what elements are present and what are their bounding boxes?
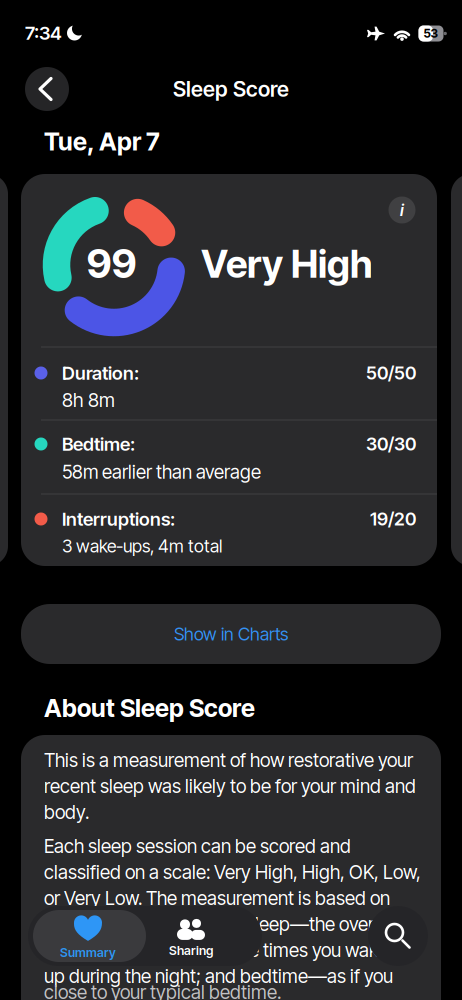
staticText: 53 <box>423 26 438 41</box>
staticText: Each sleep session can be scored and <box>44 834 351 857</box>
staticText: About Sleep Score <box>44 693 255 723</box>
staticText: i <box>400 200 404 220</box>
staticText: close to your typical bedtime. <box>44 980 281 1000</box>
staticText: amount of time asleep; the times you wak… <box>44 938 388 961</box>
staticText: Duration: <box>62 362 139 384</box>
staticText: Very High <box>201 241 373 287</box>
staticText: Sleep Score <box>173 76 289 102</box>
staticText: up during the night; and bedtime—as if y… <box>44 964 393 987</box>
staticText: 99 <box>86 239 136 288</box>
button[interactable]: Search <box>368 906 428 966</box>
button[interactable]: Summary <box>33 910 143 966</box>
staticText: 7:34 <box>25 22 62 44</box>
staticText: 30/30 <box>366 433 416 455</box>
staticText: Bedtime: <box>62 433 135 455</box>
staticText: classified on a scale: Very High, High, … <box>44 860 421 883</box>
staticText: body. <box>44 800 89 823</box>
button[interactable]: Back <box>25 67 69 111</box>
staticText: Tue, Apr 7 <box>44 127 160 156</box>
button[interactable]: Show in Charts <box>21 604 441 664</box>
staticText: 50/50 <box>366 362 416 384</box>
staticText: This is a measurement of how restorative… <box>44 748 413 771</box>
button[interactable]: Info <box>388 196 415 223</box>
staticText: Summary <box>60 945 116 960</box>
staticText: Show in Charts <box>174 623 288 645</box>
button[interactable]: Sharing <box>141 910 241 966</box>
staticText: or Very Low. The measurement is based on <box>44 886 390 909</box>
staticText: 58m earlier than average <box>62 461 261 483</box>
staticText: 8h 8m <box>62 388 115 412</box>
staticText: Sharing <box>169 943 213 958</box>
staticText: 19/20 <box>370 508 416 530</box>
staticText: 3 wake-ups, 4m total <box>62 535 222 557</box>
staticText: Interruptions: <box>62 508 175 530</box>
staticText: recent sleep was likely to be for your m… <box>44 774 416 797</box>
staticText: three factors: duration of sleep—the ove… <box>44 912 392 935</box>
